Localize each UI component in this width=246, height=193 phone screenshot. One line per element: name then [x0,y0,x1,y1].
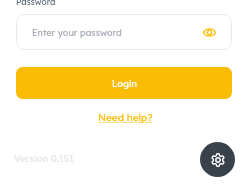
button[interactable]: Need help? [95,110,156,125]
staticText: Password [16,0,56,7]
staticText: Need help? [98,111,153,124]
button[interactable]: Login [16,67,232,99]
button[interactable]: Settings [200,142,235,177]
staticText: Version 0.151 [14,152,74,164]
staticText: Enter your password [32,27,122,38]
staticText: Login [112,78,137,89]
button[interactable]: Enter your password [16,14,232,50]
button[interactable]: Show password [198,21,220,43]
